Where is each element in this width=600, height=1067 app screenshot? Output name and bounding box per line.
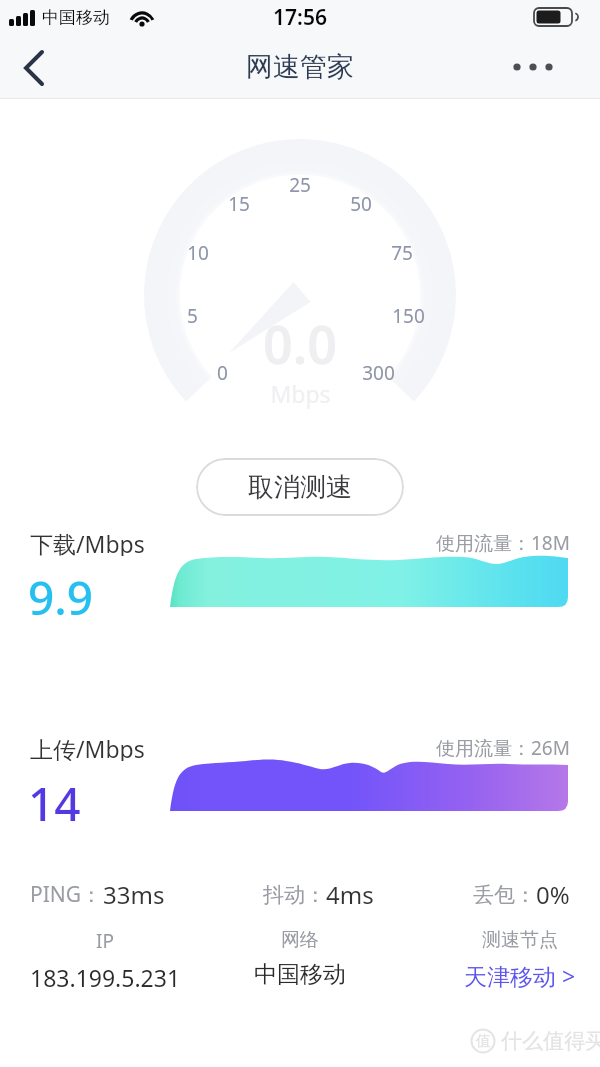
staticText: 中国移动 [42,7,110,28]
staticText: 0 [217,360,228,386]
button[interactable] [505,43,561,91]
staticText: Mbps [270,378,331,409]
staticText: 0% [536,878,570,911]
staticText: 14 [28,772,81,824]
staticText: 75 [391,240,413,266]
staticText: 取消测速 [248,471,352,504]
staticText: 17:56 [273,3,327,32]
staticText: 300 [362,360,395,386]
staticText: 25 [289,172,311,198]
staticText: 15 [228,191,250,217]
staticText: 5 [187,303,198,329]
staticText: 上传/Mbps [30,733,145,761]
staticText: 下载/Mbps [30,528,145,556]
staticText: 丢包： [473,882,536,908]
staticText: 150 [392,303,425,329]
staticText: 天津移动 > [464,960,576,991]
staticText: 网络 [281,928,319,952]
staticText: 使用流量：26M [436,735,570,759]
staticText: 183.199.5.231 [30,962,181,993]
staticText: 什么值得买 [501,1028,600,1054]
staticText: 9.9 [28,566,94,618]
staticText: 网速管家 [246,50,354,84]
staticText: 测速节点 [482,928,558,952]
staticText: 使用流量：18M [436,530,570,554]
button[interactable]: 测速节点 [440,928,600,991]
staticText: 50 [350,191,372,217]
staticText: 抖动： [263,882,326,908]
staticText: IP [96,928,114,954]
button[interactable]: 取消测速 [196,458,404,516]
staticText: 0.0 [263,308,337,378]
button[interactable] [10,44,58,92]
staticText: PING： [30,880,103,909]
staticText: 33ms [103,878,165,911]
staticText: 中国移动 [254,960,346,989]
staticText: 值 [476,1032,491,1051]
staticText: 4ms [326,878,374,911]
staticText: 10 [187,240,209,266]
